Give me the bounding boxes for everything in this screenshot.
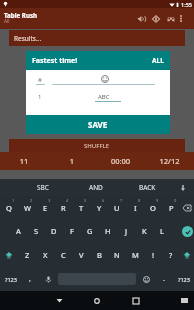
- staticText: 2: [30, 198, 33, 203]
- staticText: 9: [156, 198, 159, 203]
- staticText: Fastest time!: [32, 56, 78, 66]
- staticText: .: [163, 274, 165, 284]
- button[interactable]: Z: [18, 243, 36, 267]
- staticText: 00:00: [96, 156, 145, 166]
- button[interactable]: B: [90, 243, 108, 267]
- button[interactable]: Comma: [21, 267, 39, 291]
- staticText: M: [132, 250, 139, 260]
- button[interactable]: Emoji: [137, 267, 155, 291]
- button[interactable]: G: [81, 219, 99, 243]
- staticText: ABC: [98, 93, 110, 101]
- staticText: X: [43, 250, 48, 260]
- button[interactable]: Games: [163, 8, 178, 29]
- button[interactable]: Backspace: [180, 196, 194, 219]
- staticText: P: [169, 203, 174, 213]
- staticText: Results...: [14, 34, 42, 43]
- staticText: 8: [138, 198, 141, 203]
- button[interactable]: R: [54, 196, 72, 219]
- staticText: SBC: [37, 183, 49, 192]
- button[interactable]: L: [153, 219, 171, 243]
- staticText: 0: [174, 198, 177, 203]
- button[interactable]: AND: [77, 179, 115, 196]
- staticText: 1: [12, 198, 15, 203]
- staticText: 3: [48, 198, 51, 203]
- staticText: R: [61, 203, 66, 213]
- button[interactable]: K: [135, 219, 153, 243]
- button[interactable]: X: [36, 243, 54, 267]
- button[interactable]: S: [27, 219, 45, 243]
- button[interactable]: Results...: [9, 30, 185, 46]
- staticText: Z: [25, 250, 30, 260]
- staticText: J: [125, 226, 128, 236]
- staticText: 1: [38, 93, 42, 101]
- staticText: H: [105, 226, 111, 236]
- button[interactable]: Sound: [133, 8, 148, 29]
- button[interactable]: F: [63, 219, 81, 243]
- staticText: I: [134, 203, 137, 213]
- staticText: 12/12: [145, 156, 194, 166]
- staticText: ?123: [5, 276, 17, 283]
- button[interactable]: Shift: [0, 243, 18, 267]
- button[interactable]: V: [72, 243, 90, 267]
- button[interactable]: Hide keyboard: [179, 291, 190, 310]
- button[interactable]: D: [45, 219, 63, 243]
- button[interactable]: BACK: [128, 179, 166, 196]
- button[interactable]: A: [9, 219, 27, 243]
- staticText: T: [79, 203, 84, 213]
- button[interactable]: Recent apps: [128, 291, 144, 310]
- staticText: 7: [120, 198, 123, 203]
- staticText: O: [150, 203, 156, 213]
- staticText: Q: [6, 203, 12, 213]
- button[interactable]: O: [144, 196, 162, 219]
- button[interactable]: Q: [0, 196, 18, 219]
- staticText: K: [142, 226, 147, 236]
- button[interactable]: ?: [162, 243, 180, 267]
- staticText: 1:55: [181, 1, 192, 8]
- button[interactable]: Y: [90, 196, 108, 219]
- button[interactable]: T: [72, 196, 90, 219]
- button[interactable]: SBC: [24, 179, 62, 196]
- button[interactable]: Symbols right: [173, 267, 194, 291]
- staticText: AND: [89, 183, 103, 192]
- button[interactable]: SAVE: [26, 115, 170, 134]
- button[interactable]: C: [54, 243, 72, 267]
- button[interactable]: U: [108, 196, 126, 219]
- staticText: Table Rush: [4, 11, 38, 19]
- staticText: SHUFFLE: [84, 142, 110, 150]
- button[interactable]: Home: [89, 291, 105, 310]
- button[interactable]: J: [117, 219, 135, 243]
- button[interactable]: ALL: [152, 56, 164, 65]
- button[interactable]: N: [108, 243, 126, 267]
- button[interactable]: !: [144, 243, 162, 267]
- button[interactable]: Symbols: [0, 267, 21, 291]
- staticText: Y: [97, 203, 102, 213]
- button[interactable]: Shift right: [180, 243, 194, 267]
- staticText: 4: [66, 198, 69, 203]
- button[interactable]: Back: [51, 291, 67, 310]
- staticText: ,: [29, 274, 31, 284]
- button[interactable]: Voice input: [39, 267, 57, 291]
- staticText: G: [87, 226, 93, 236]
- button[interactable]: SHUFFLE: [9, 139, 185, 152]
- button[interactable]: H: [99, 219, 117, 243]
- button[interactable]: Period: [155, 267, 173, 291]
- staticText: U: [114, 203, 120, 213]
- button[interactable]: More options: [176, 8, 186, 29]
- button[interactable]: Help: [148, 8, 163, 29]
- staticText: BACK: [139, 183, 156, 192]
- button[interactable]: I: [126, 196, 144, 219]
- button[interactable]: E: [36, 196, 54, 219]
- button[interactable]: P: [162, 196, 180, 219]
- staticText: B: [97, 250, 102, 260]
- staticText: S: [34, 226, 39, 236]
- staticText: W: [24, 203, 31, 213]
- staticText: #: [38, 76, 42, 84]
- staticText: L: [160, 226, 164, 236]
- button[interactable]: M: [126, 243, 144, 267]
- button[interactable]: Expand suggestions: [176, 179, 190, 196]
- staticText: F: [70, 226, 74, 236]
- button[interactable]: W: [18, 196, 36, 219]
- button[interactable]: Enter: [180, 219, 194, 243]
- staticText: ?: [169, 250, 173, 260]
